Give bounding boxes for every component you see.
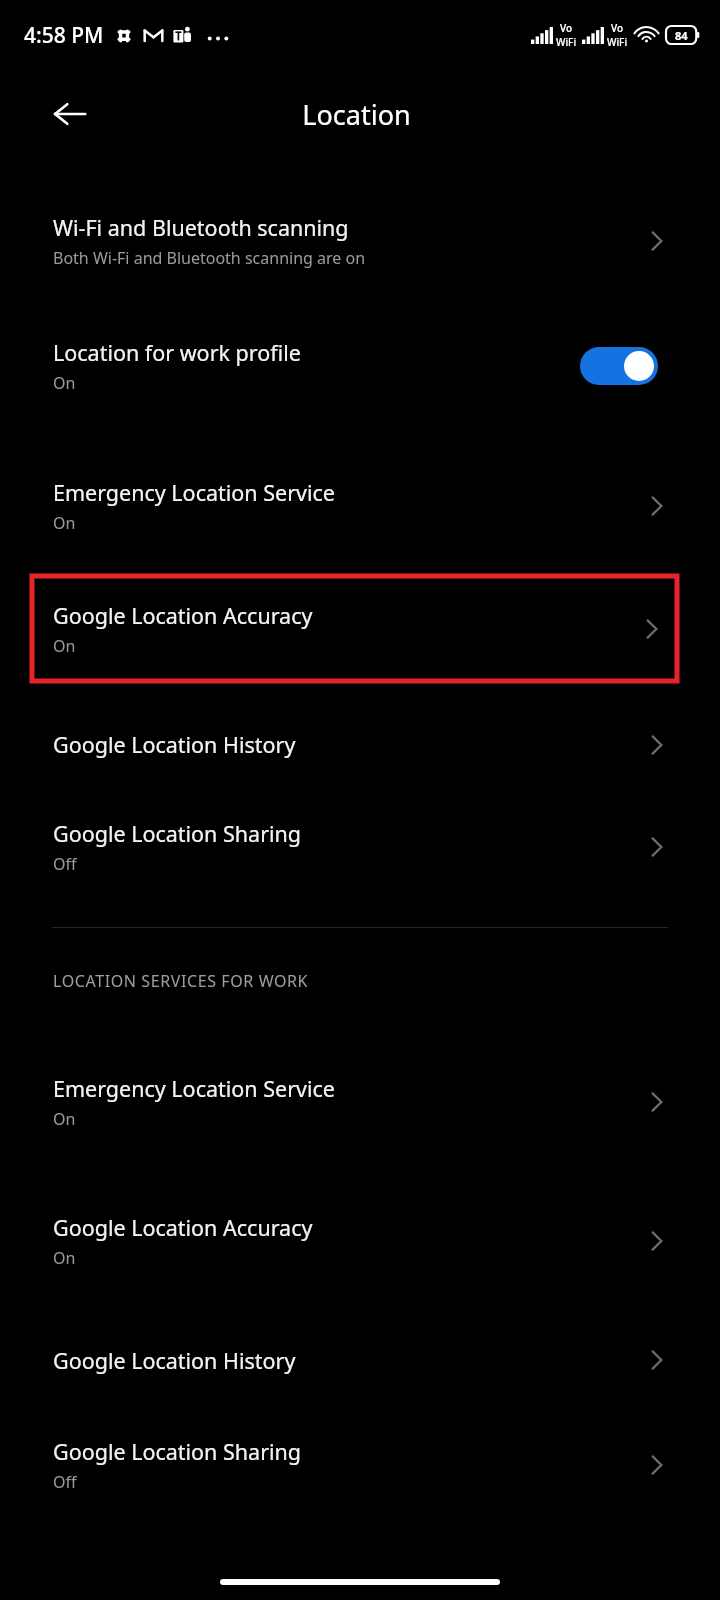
staticText: Vo bbox=[560, 21, 573, 35]
button[interactable]: Google Location Accuracy bbox=[0, 1171, 720, 1310]
button[interactable]: Location for work profile toggle bbox=[580, 347, 658, 385]
staticText: WiFi bbox=[607, 35, 628, 49]
staticText: Emergency Location Service bbox=[53, 1074, 335, 1103]
staticText: Location for work profile bbox=[53, 338, 301, 367]
staticText: Google Location History bbox=[53, 1346, 296, 1375]
staticText: WiFi bbox=[556, 35, 577, 49]
staticText: On bbox=[53, 1108, 76, 1130]
button[interactable]: Emergency Location Service bbox=[0, 436, 720, 576]
staticText: Vo bbox=[611, 21, 624, 35]
staticText: 84 bbox=[675, 28, 688, 43]
button[interactable]: Google Location History bbox=[0, 1310, 720, 1410]
staticText: 4:58 PM bbox=[24, 21, 104, 50]
button[interactable]: Location for work profile bbox=[0, 296, 720, 436]
staticText: Google Location History bbox=[53, 730, 296, 759]
button[interactable]: Back bbox=[40, 84, 100, 144]
staticText: LOCATION SERVICES FOR WORK bbox=[53, 970, 309, 992]
button[interactable]: Google Location Sharing bbox=[0, 1410, 720, 1520]
button[interactable]: Google Location Sharing bbox=[0, 792, 720, 902]
staticText: On bbox=[53, 635, 76, 657]
staticText: Off bbox=[53, 1471, 77, 1493]
staticText: Both Wi-Fi and Bluetooth scanning are on bbox=[53, 247, 366, 269]
staticText: Emergency Location Service bbox=[53, 478, 335, 507]
button[interactable]: Wi-Fi and Bluetooth scanning bbox=[0, 186, 720, 296]
button[interactable]: Emergency Location Service bbox=[0, 1032, 720, 1171]
staticText: On bbox=[53, 372, 76, 394]
staticText: On bbox=[53, 512, 76, 534]
staticText: Wi-Fi and Bluetooth scanning bbox=[53, 213, 349, 242]
button[interactable]: Google Location Accuracy bbox=[32, 576, 677, 681]
staticText: Google Location Accuracy bbox=[53, 1213, 313, 1242]
staticText: Google Location Sharing bbox=[53, 819, 302, 848]
staticText: Google Location Sharing bbox=[53, 1437, 302, 1466]
staticText: Google Location Accuracy bbox=[53, 601, 313, 630]
button[interactable]: Google Location History bbox=[0, 697, 720, 792]
staticText: Location bbox=[302, 96, 411, 133]
staticText: On bbox=[53, 1247, 76, 1269]
staticText: Off bbox=[53, 853, 77, 875]
